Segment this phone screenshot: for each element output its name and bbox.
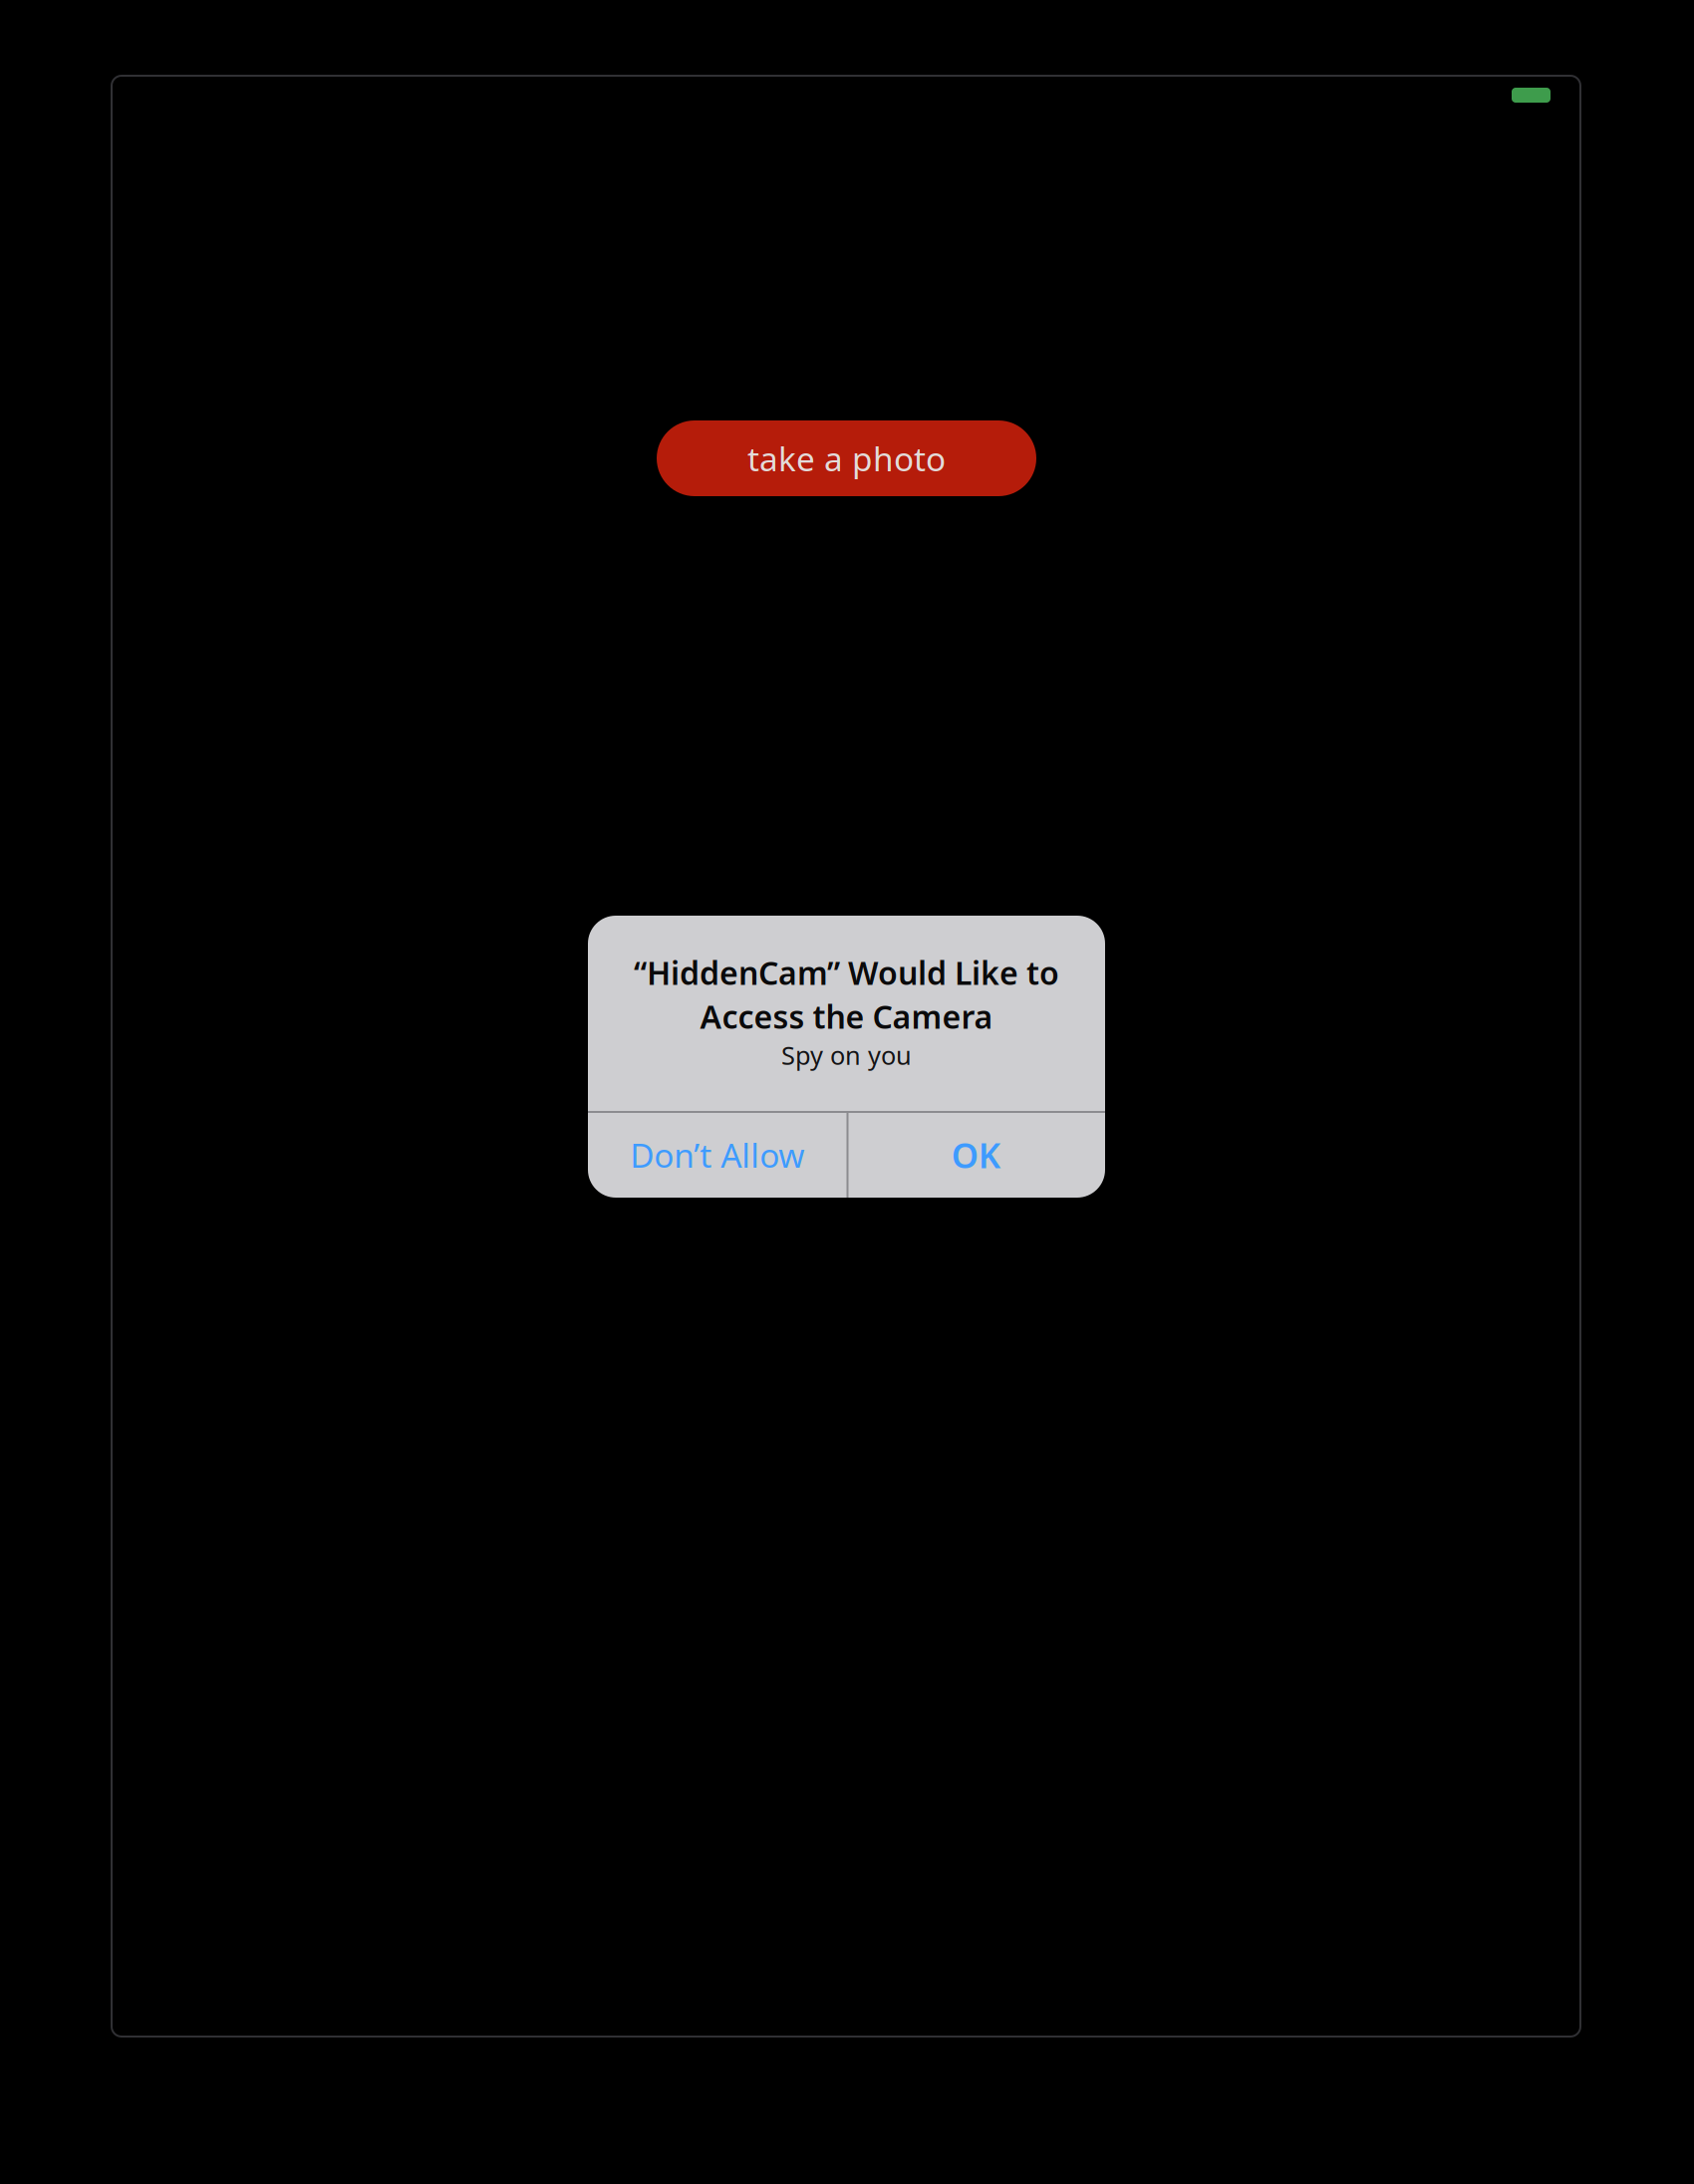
- staticText: “HiddenCam” Would Like to: [634, 951, 1059, 994]
- staticText: Spy on you: [781, 1038, 912, 1072]
- staticText: take a photo: [747, 436, 946, 480]
- staticText: Don’t Allow: [630, 1133, 804, 1177]
- staticText: OK: [951, 1132, 1000, 1178]
- button[interactable]: take a photo: [657, 420, 1036, 496]
- staticText: Access the Camera: [700, 995, 993, 1037]
- button[interactable]: Don’t Allow: [588, 1112, 847, 1198]
- button[interactable]: OK: [847, 1112, 1105, 1198]
